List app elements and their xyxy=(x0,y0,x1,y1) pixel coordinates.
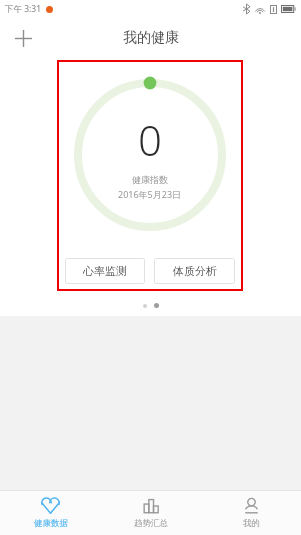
button[interactable]: 心率监测 xyxy=(65,258,145,284)
button[interactable]: 趋势汇总 xyxy=(101,491,201,535)
button[interactable]: 0 xyxy=(57,60,243,291)
staticText: 0 xyxy=(138,111,162,168)
staticText: 下午 3:31 xyxy=(5,3,42,15)
staticText: 心率监测 xyxy=(83,264,127,278)
button[interactable]: 我的 xyxy=(201,491,301,535)
button[interactable]: Add xyxy=(8,23,38,53)
button[interactable]: 健康数据 xyxy=(0,491,101,535)
staticText: 我的 xyxy=(243,518,260,529)
staticText: 体质分析 xyxy=(173,264,217,278)
staticText: 趋势汇总 xyxy=(134,518,168,529)
staticText: 2016年5月23日 xyxy=(118,188,182,200)
staticText: 健康指数 xyxy=(132,174,168,185)
staticText: 我的健康 xyxy=(123,29,179,47)
button[interactable]: 体质分析 xyxy=(154,258,235,284)
staticText: 健康数据 xyxy=(34,518,68,529)
